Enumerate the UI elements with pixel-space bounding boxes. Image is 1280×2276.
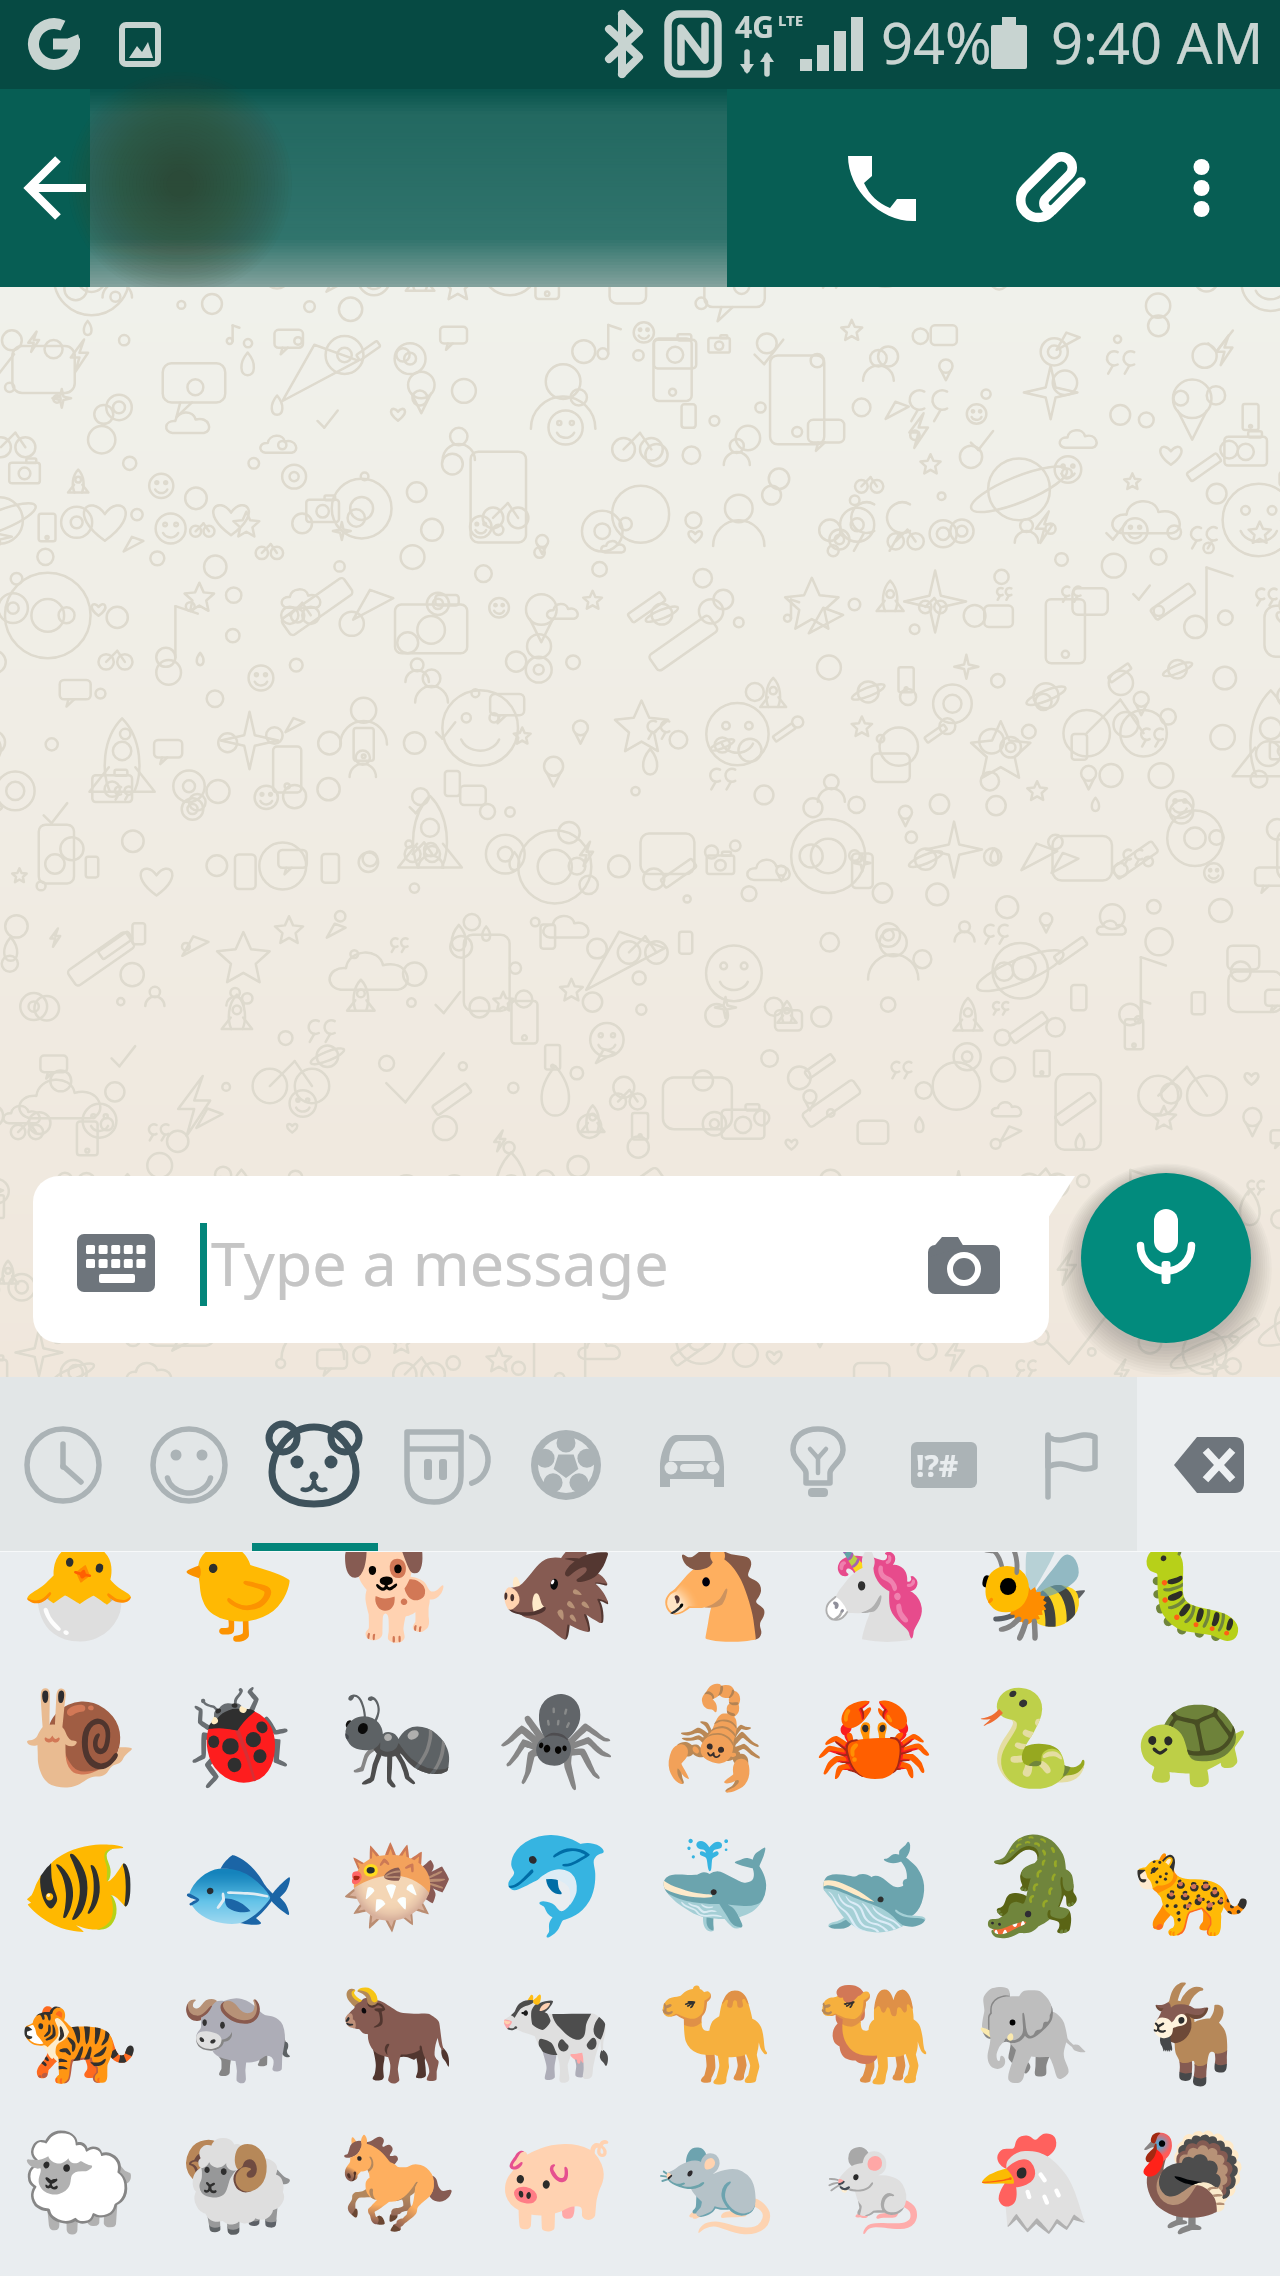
button[interactable]: 🐁 — [795, 2108, 954, 2256]
button[interactable]: 🐳 — [636, 1812, 795, 1960]
button[interactable]: 🐕 — [318, 1552, 477, 1664]
button[interactable]: 🐠 — [0, 1812, 159, 1960]
staticText: 🦄 — [815, 1552, 934, 1646]
staticText: 🐋 — [815, 1831, 934, 1942]
button[interactable]: 🐢 — [1113, 1664, 1272, 1812]
button[interactable]: 🦃 — [1113, 2108, 1272, 2256]
button[interactable]: 🐴 — [636, 1552, 795, 1664]
button[interactable]: 🐄 — [477, 1960, 636, 2108]
button[interactable]: 🐍 — [954, 1664, 1113, 1812]
button[interactable]: 🐪 — [636, 1960, 795, 2108]
button[interactable]: 🐔 — [954, 2108, 1113, 2256]
button[interactable]: 🐊 — [954, 1812, 1113, 1960]
button[interactable]: 🐀 — [636, 2108, 795, 2256]
staticText: 🐴 — [656, 1552, 775, 1646]
button[interactable]: 🐅 — [0, 1960, 159, 2108]
staticText: 🐪 — [656, 1979, 775, 2090]
button[interactable]: More options — [1150, 134, 1260, 244]
button[interactable]: Symbols — [882, 1377, 1008, 1552]
staticText: LTE — [778, 10, 804, 30]
button[interactable]: 🦄 — [795, 1552, 954, 1664]
staticText: 🦂 — [656, 1683, 775, 1794]
button[interactable]: 🐎 — [318, 2108, 477, 2256]
button[interactable]: 🐗 — [477, 1552, 636, 1664]
button[interactable]: 🐤 — [159, 1552, 318, 1664]
button[interactable]: Flags — [1008, 1377, 1134, 1552]
staticText: 🐂 — [338, 1979, 457, 2090]
staticText: !?# — [916, 1445, 959, 1486]
button[interactable]: 🦂 — [636, 1664, 795, 1812]
button[interactable]: 🐃 — [159, 1960, 318, 2108]
button[interactable]: 🦀 — [795, 1664, 954, 1812]
button[interactable]: 🐟 — [159, 1812, 318, 1960]
staticText: 🐏 — [179, 2127, 298, 2238]
staticText: 🦃 — [1133, 2127, 1252, 2238]
button[interactable]: Back — [0, 89, 95, 287]
button[interactable]: Type a message — [33, 1176, 1049, 1343]
staticText: 🐕 — [338, 1552, 457, 1646]
staticText: 🐁 — [815, 2127, 934, 2238]
staticText: Type a message — [211, 1221, 669, 1304]
staticText: 🐞 — [179, 1683, 298, 1794]
staticText: 🐍 — [974, 1683, 1093, 1794]
staticText: 🐫 — [815, 1979, 934, 2090]
staticText: 🐜 — [338, 1683, 457, 1794]
button[interactable]: 🐋 — [795, 1812, 954, 1960]
button[interactable]: 🐫 — [795, 1960, 954, 2108]
button[interactable]: Record voice message — [1081, 1173, 1251, 1343]
button[interactable]: 🐏 — [159, 2108, 318, 2256]
staticText: 4G — [735, 6, 774, 47]
staticText: 🐊 — [974, 1831, 1093, 1942]
button[interactable]: Activity — [504, 1377, 630, 1552]
button[interactable]: 🐝 — [954, 1552, 1113, 1664]
button[interactable]: Travel and places — [630, 1377, 756, 1552]
staticText: 🐣 — [20, 1552, 139, 1646]
button[interactable]: 🐡 — [318, 1812, 477, 1960]
button[interactable]: 🐌 — [0, 1664, 159, 1812]
button[interactable]: 🐞 — [159, 1664, 318, 1812]
staticText: 🐑 — [20, 2127, 139, 2238]
button[interactable]: 🐛 — [1113, 1552, 1272, 1664]
staticText: 🦀 — [815, 1683, 934, 1794]
staticText: 9:40 AM — [1051, 4, 1264, 80]
staticText: 🐘 — [974, 1979, 1093, 2090]
button[interactable]: 🐆 — [1113, 1812, 1272, 1960]
staticText: 🐢 — [1133, 1683, 1252, 1794]
staticText: 🕷 — [497, 1683, 616, 1794]
button[interactable]: Smileys and people — [126, 1377, 252, 1552]
staticText: 🐠 — [20, 1831, 139, 1942]
button[interactable]: Backspace — [1134, 1377, 1277, 1552]
button[interactable]: Objects — [756, 1377, 882, 1552]
button[interactable]: 🐣 — [0, 1552, 159, 1664]
staticText: 🐆 — [1133, 1831, 1252, 1942]
staticText: 🐳 — [656, 1831, 775, 1942]
button[interactable]: 🕷 — [477, 1664, 636, 1812]
staticText: 🐌 — [20, 1683, 139, 1794]
staticText: 🐤 — [179, 1552, 298, 1646]
button[interactable]: 🐐 — [1113, 1960, 1272, 2108]
button[interactable]: Attach — [983, 129, 1123, 249]
staticText: 🐅 — [20, 1979, 139, 2090]
button[interactable]: Animals and nature — [252, 1377, 378, 1552]
button[interactable]: Recent emoji — [0, 1377, 126, 1552]
staticText: 🐃 — [179, 1979, 298, 2090]
button[interactable]: 🐬 — [477, 1812, 636, 1960]
staticText: 🐎 — [338, 2127, 457, 2238]
staticText: 🐟 — [179, 1831, 298, 1942]
staticText: 🐛 — [1133, 1552, 1252, 1646]
button[interactable]: 🐘 — [954, 1960, 1113, 2108]
button[interactable]: 🐜 — [318, 1664, 477, 1812]
staticText: 🐔 — [974, 2127, 1093, 2238]
staticText: 🐡 — [338, 1831, 457, 1942]
staticText: 🐬 — [497, 1831, 616, 1942]
staticText: 🐄 — [497, 1979, 616, 2090]
staticText: 94% — [881, 4, 992, 80]
button[interactable]: Call — [812, 134, 952, 244]
button[interactable]: 🐑 — [0, 2108, 159, 2256]
staticText: 🐝 — [974, 1552, 1093, 1646]
staticText: 🐗 — [497, 1552, 616, 1646]
staticText: 🐀 — [656, 2127, 775, 2238]
button[interactable]: 🐂 — [318, 1960, 477, 2108]
button[interactable]: 🐖 — [477, 2108, 636, 2256]
button[interactable]: Food and drink — [378, 1377, 504, 1552]
